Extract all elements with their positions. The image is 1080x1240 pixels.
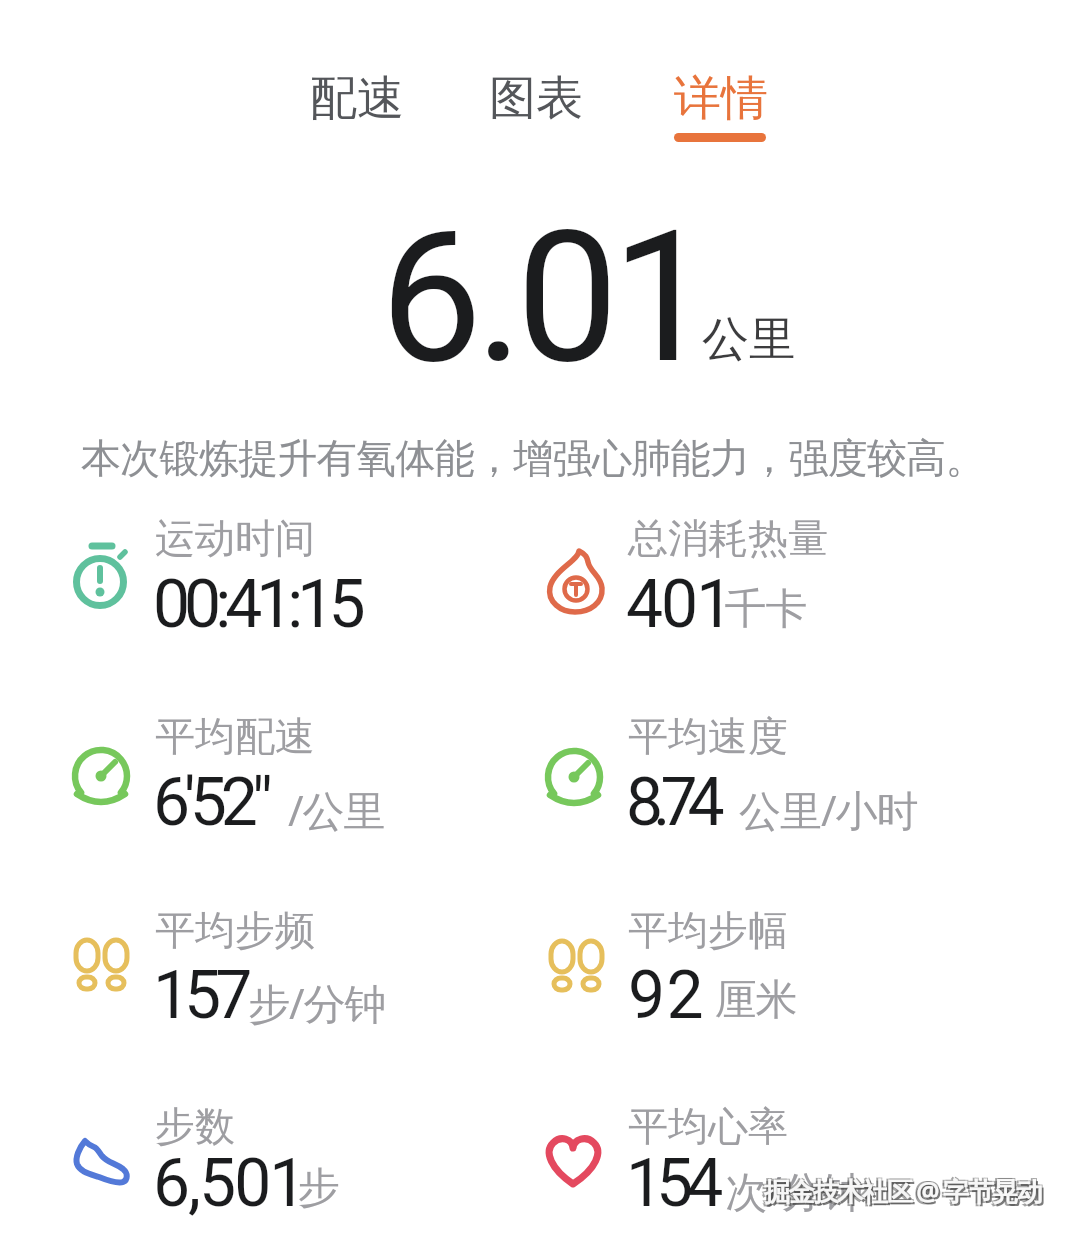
staticText: 00:41:15 <box>153 566 360 643</box>
button[interactable]: 图表 <box>478 56 598 136</box>
staticText: 掘金技术社区 @ 字节晃动 <box>766 1175 1044 1211</box>
staticText: 运动时间 <box>155 513 315 563</box>
staticText: 401 <box>626 566 732 643</box>
staticText: 步 <box>298 1162 339 1215</box>
staticText: 6.01 <box>380 191 707 404</box>
button[interactable]: 配速 <box>299 56 419 136</box>
staticText: 次/分钟 <box>725 1162 863 1219</box>
staticText: 本次锻炼提升有氧体能，增强心肺能力，强度较高。 <box>81 433 985 483</box>
staticText: 平均步幅 <box>628 905 788 955</box>
staticText: 154 <box>626 1145 717 1222</box>
staticText: 步/分钟 <box>248 974 386 1031</box>
staticText: /公里 <box>288 781 385 838</box>
staticText: 平均步频 <box>155 905 315 955</box>
staticText: 步数 <box>155 1101 235 1151</box>
staticText: 掘金技术社区 @ 字节晃动 <box>764 1173 1042 1209</box>
button[interactable]: 详情 <box>660 56 780 136</box>
staticText: 掘金技术社区 @ 字节晃动 <box>765 1172 1043 1208</box>
staticText: 总消耗热量 <box>628 513 828 563</box>
staticText: 详情 <box>674 69 768 128</box>
staticText: 配速 <box>310 69 404 128</box>
staticText: 92 <box>628 957 706 1034</box>
staticText: 6'52" <box>153 764 267 841</box>
staticText: 掘金技术社区 @ 字节晃动 <box>762 1175 1040 1211</box>
staticText: 公里/小时 <box>739 781 918 838</box>
staticText: 8.74 <box>626 764 715 841</box>
staticText: 千卡 <box>725 583 807 636</box>
staticText: 掘金技术社区 @ 字节晃动 <box>762 1172 1040 1208</box>
staticText: 平均心率 <box>628 1101 788 1151</box>
staticText: 厘米 <box>715 974 797 1027</box>
staticText: 157 <box>153 957 247 1034</box>
staticText: 图表 <box>489 69 583 128</box>
staticText: 平均速度 <box>628 711 788 761</box>
staticText: 公里 <box>702 310 796 369</box>
staticText: 6,501 <box>153 1145 305 1222</box>
staticText: 平均配速 <box>155 711 315 761</box>
